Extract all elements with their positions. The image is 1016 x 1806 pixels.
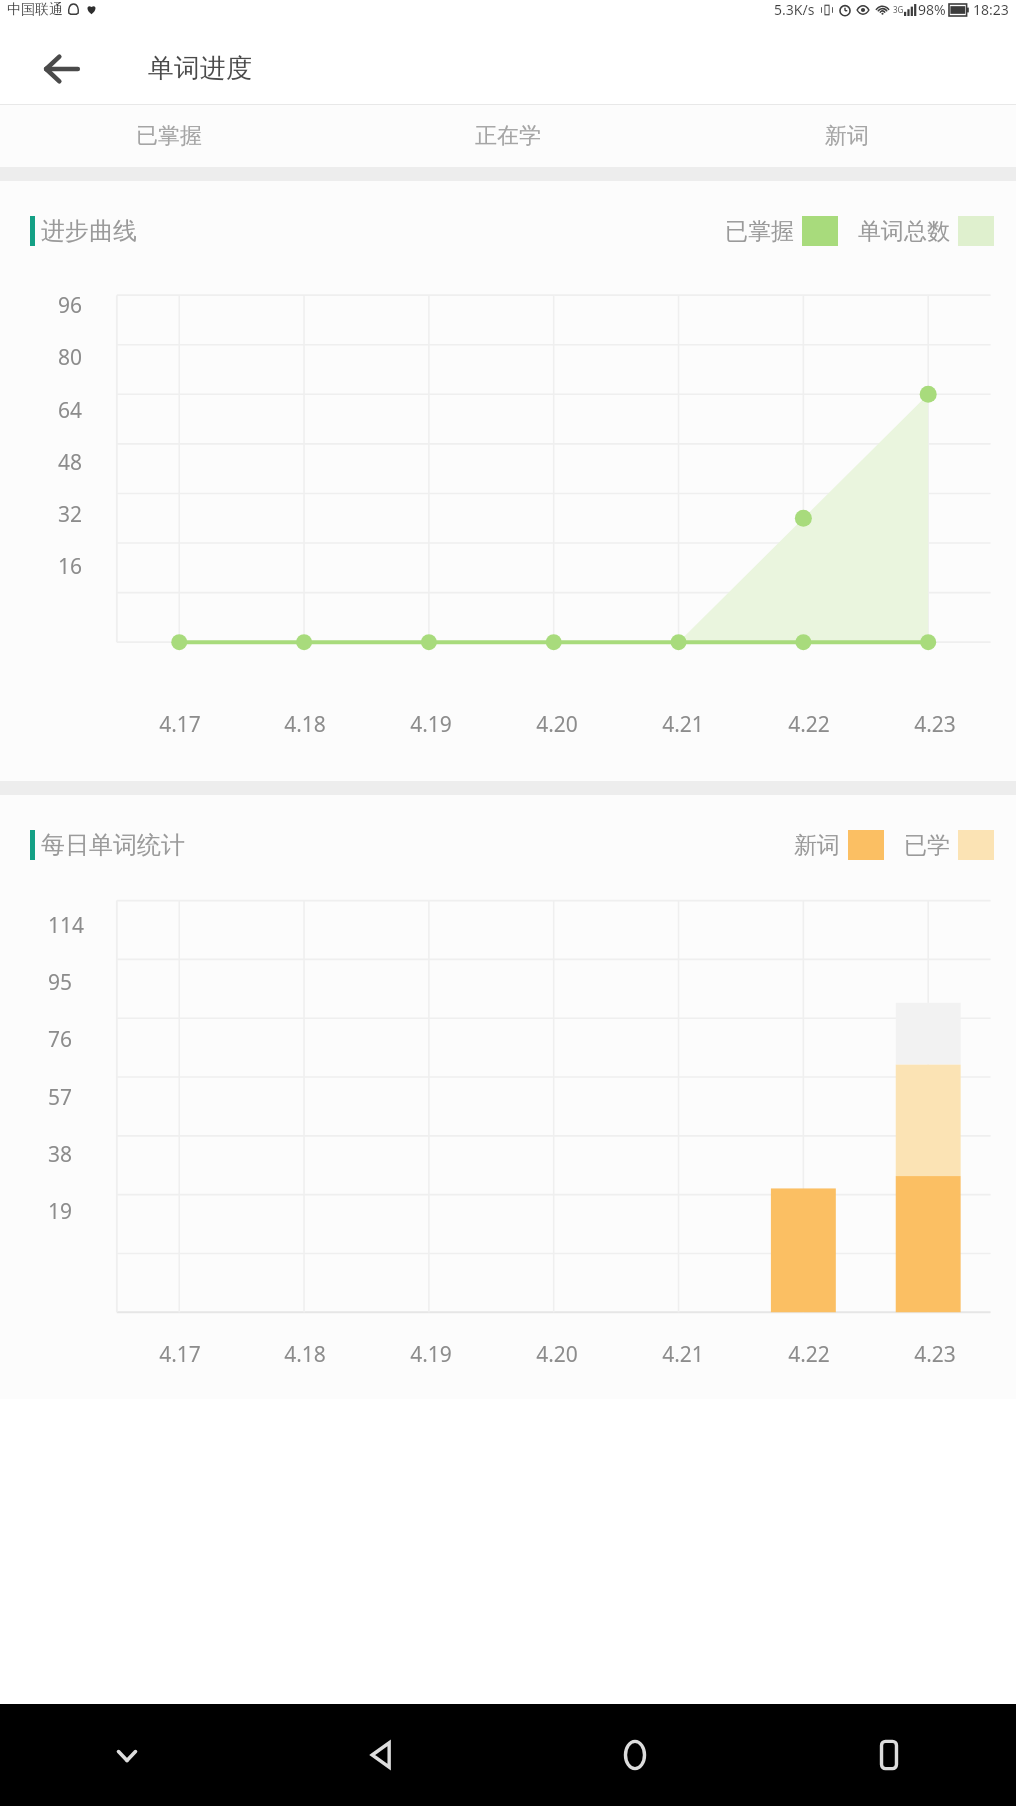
staticText: 5.3K/s	[774, 0, 815, 19]
button[interactable]: Hide navigation bar	[0, 1704, 254, 1806]
staticText: 新词	[825, 122, 869, 150]
button[interactable]: 正在学	[338, 105, 677, 167]
staticText: 4.20	[536, 1340, 578, 1369]
staticText: 96	[58, 291, 83, 320]
button[interactable]: 新词	[677, 105, 1016, 167]
staticText: 已学	[904, 831, 950, 860]
button[interactable]: Recent apps	[762, 1704, 1016, 1806]
staticText: 4.17	[159, 1340, 201, 1369]
staticText: 4.18	[284, 1340, 326, 1369]
staticText: 4.20	[536, 710, 578, 739]
staticText: 95	[48, 968, 73, 997]
staticText: 4.21	[662, 710, 704, 739]
staticText: 已掌握	[136, 122, 202, 150]
staticText: 4.22	[788, 710, 830, 739]
staticText: 进步曲线	[41, 216, 137, 246]
staticText: 每日单词统计	[41, 830, 185, 860]
button[interactable]: Back	[254, 1704, 508, 1806]
staticText: 114	[48, 911, 85, 940]
staticText: 单词总数	[858, 217, 950, 246]
button[interactable]: Home	[508, 1704, 762, 1806]
staticText: 3G	[893, 4, 904, 15]
staticText: 4.19	[410, 710, 452, 739]
staticText: 4.23	[914, 1340, 956, 1369]
staticText: 4.21	[662, 1340, 704, 1369]
staticText: 正在学	[475, 122, 541, 150]
staticText: 98%	[918, 0, 946, 19]
staticText: 48	[58, 448, 83, 477]
staticText: 32	[58, 500, 83, 529]
staticText: 4.22	[788, 1340, 830, 1369]
staticText: 19	[48, 1197, 73, 1226]
staticText: 4.19	[410, 1340, 452, 1369]
staticText: 76	[48, 1025, 73, 1054]
staticText: 新词	[794, 831, 840, 860]
staticText: 中国联通	[7, 1, 63, 19]
staticText: 4.23	[914, 710, 956, 739]
button[interactable]: 已掌握	[0, 105, 338, 167]
staticText: 57	[48, 1083, 73, 1112]
staticText: 38	[48, 1140, 73, 1169]
staticText: 18:23	[973, 0, 1009, 19]
staticText: 80	[58, 343, 83, 372]
staticText: 单词进度	[148, 52, 252, 85]
staticText: 已掌握	[725, 217, 794, 246]
staticText: 64	[58, 396, 83, 425]
button[interactable]: Back	[40, 47, 84, 91]
staticText: 4.17	[159, 710, 201, 739]
staticText: 4.18	[284, 710, 326, 739]
staticText: 16	[58, 552, 83, 581]
